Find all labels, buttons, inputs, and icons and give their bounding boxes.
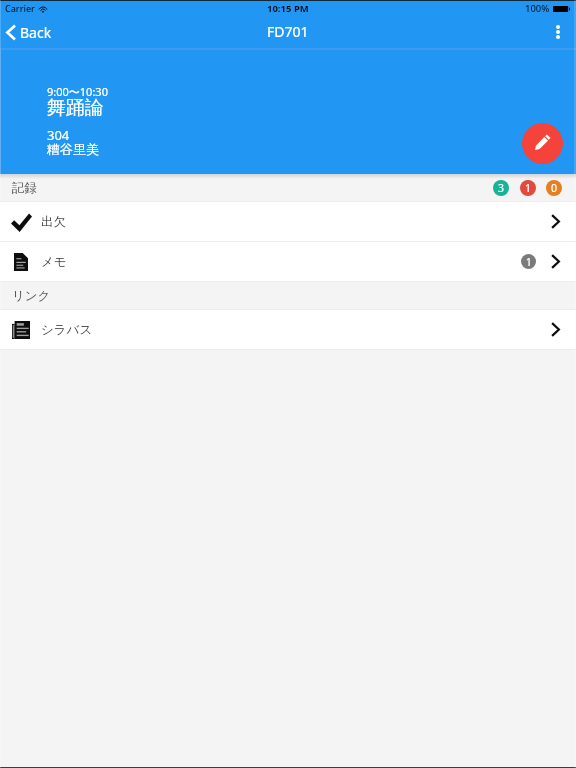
staticText: 0 [551, 181, 558, 195]
button[interactable]: More options [542, 16, 574, 48]
staticText: リンク [12, 288, 51, 304]
staticText: 記録 [12, 180, 37, 196]
staticText: 出欠 [41, 214, 66, 230]
button[interactable]: Edit [522, 123, 563, 164]
staticText: 100% [525, 2, 550, 15]
staticText: 9:00〜10:30 [47, 84, 108, 99]
staticText: メモ [41, 254, 67, 270]
staticText: 10:15 PM [267, 2, 309, 15]
staticText: 1 [526, 255, 532, 269]
staticText: Back [20, 23, 52, 42]
staticText: 3 [498, 181, 505, 195]
button[interactable]: 出欠 [0, 202, 576, 242]
staticText: 304 [47, 126, 70, 144]
button[interactable]: シラバス [0, 310, 576, 350]
button[interactable]: Back [0, 19, 62, 46]
staticText: 1 [525, 181, 532, 195]
staticText: Carrier [5, 2, 35, 14]
staticText: FD701 [267, 22, 309, 41]
staticText: 糟谷里美 [47, 141, 99, 157]
staticText: シラバス [41, 322, 93, 338]
staticText: 舞踊論 [47, 96, 104, 120]
button[interactable]: メモ [0, 242, 576, 282]
